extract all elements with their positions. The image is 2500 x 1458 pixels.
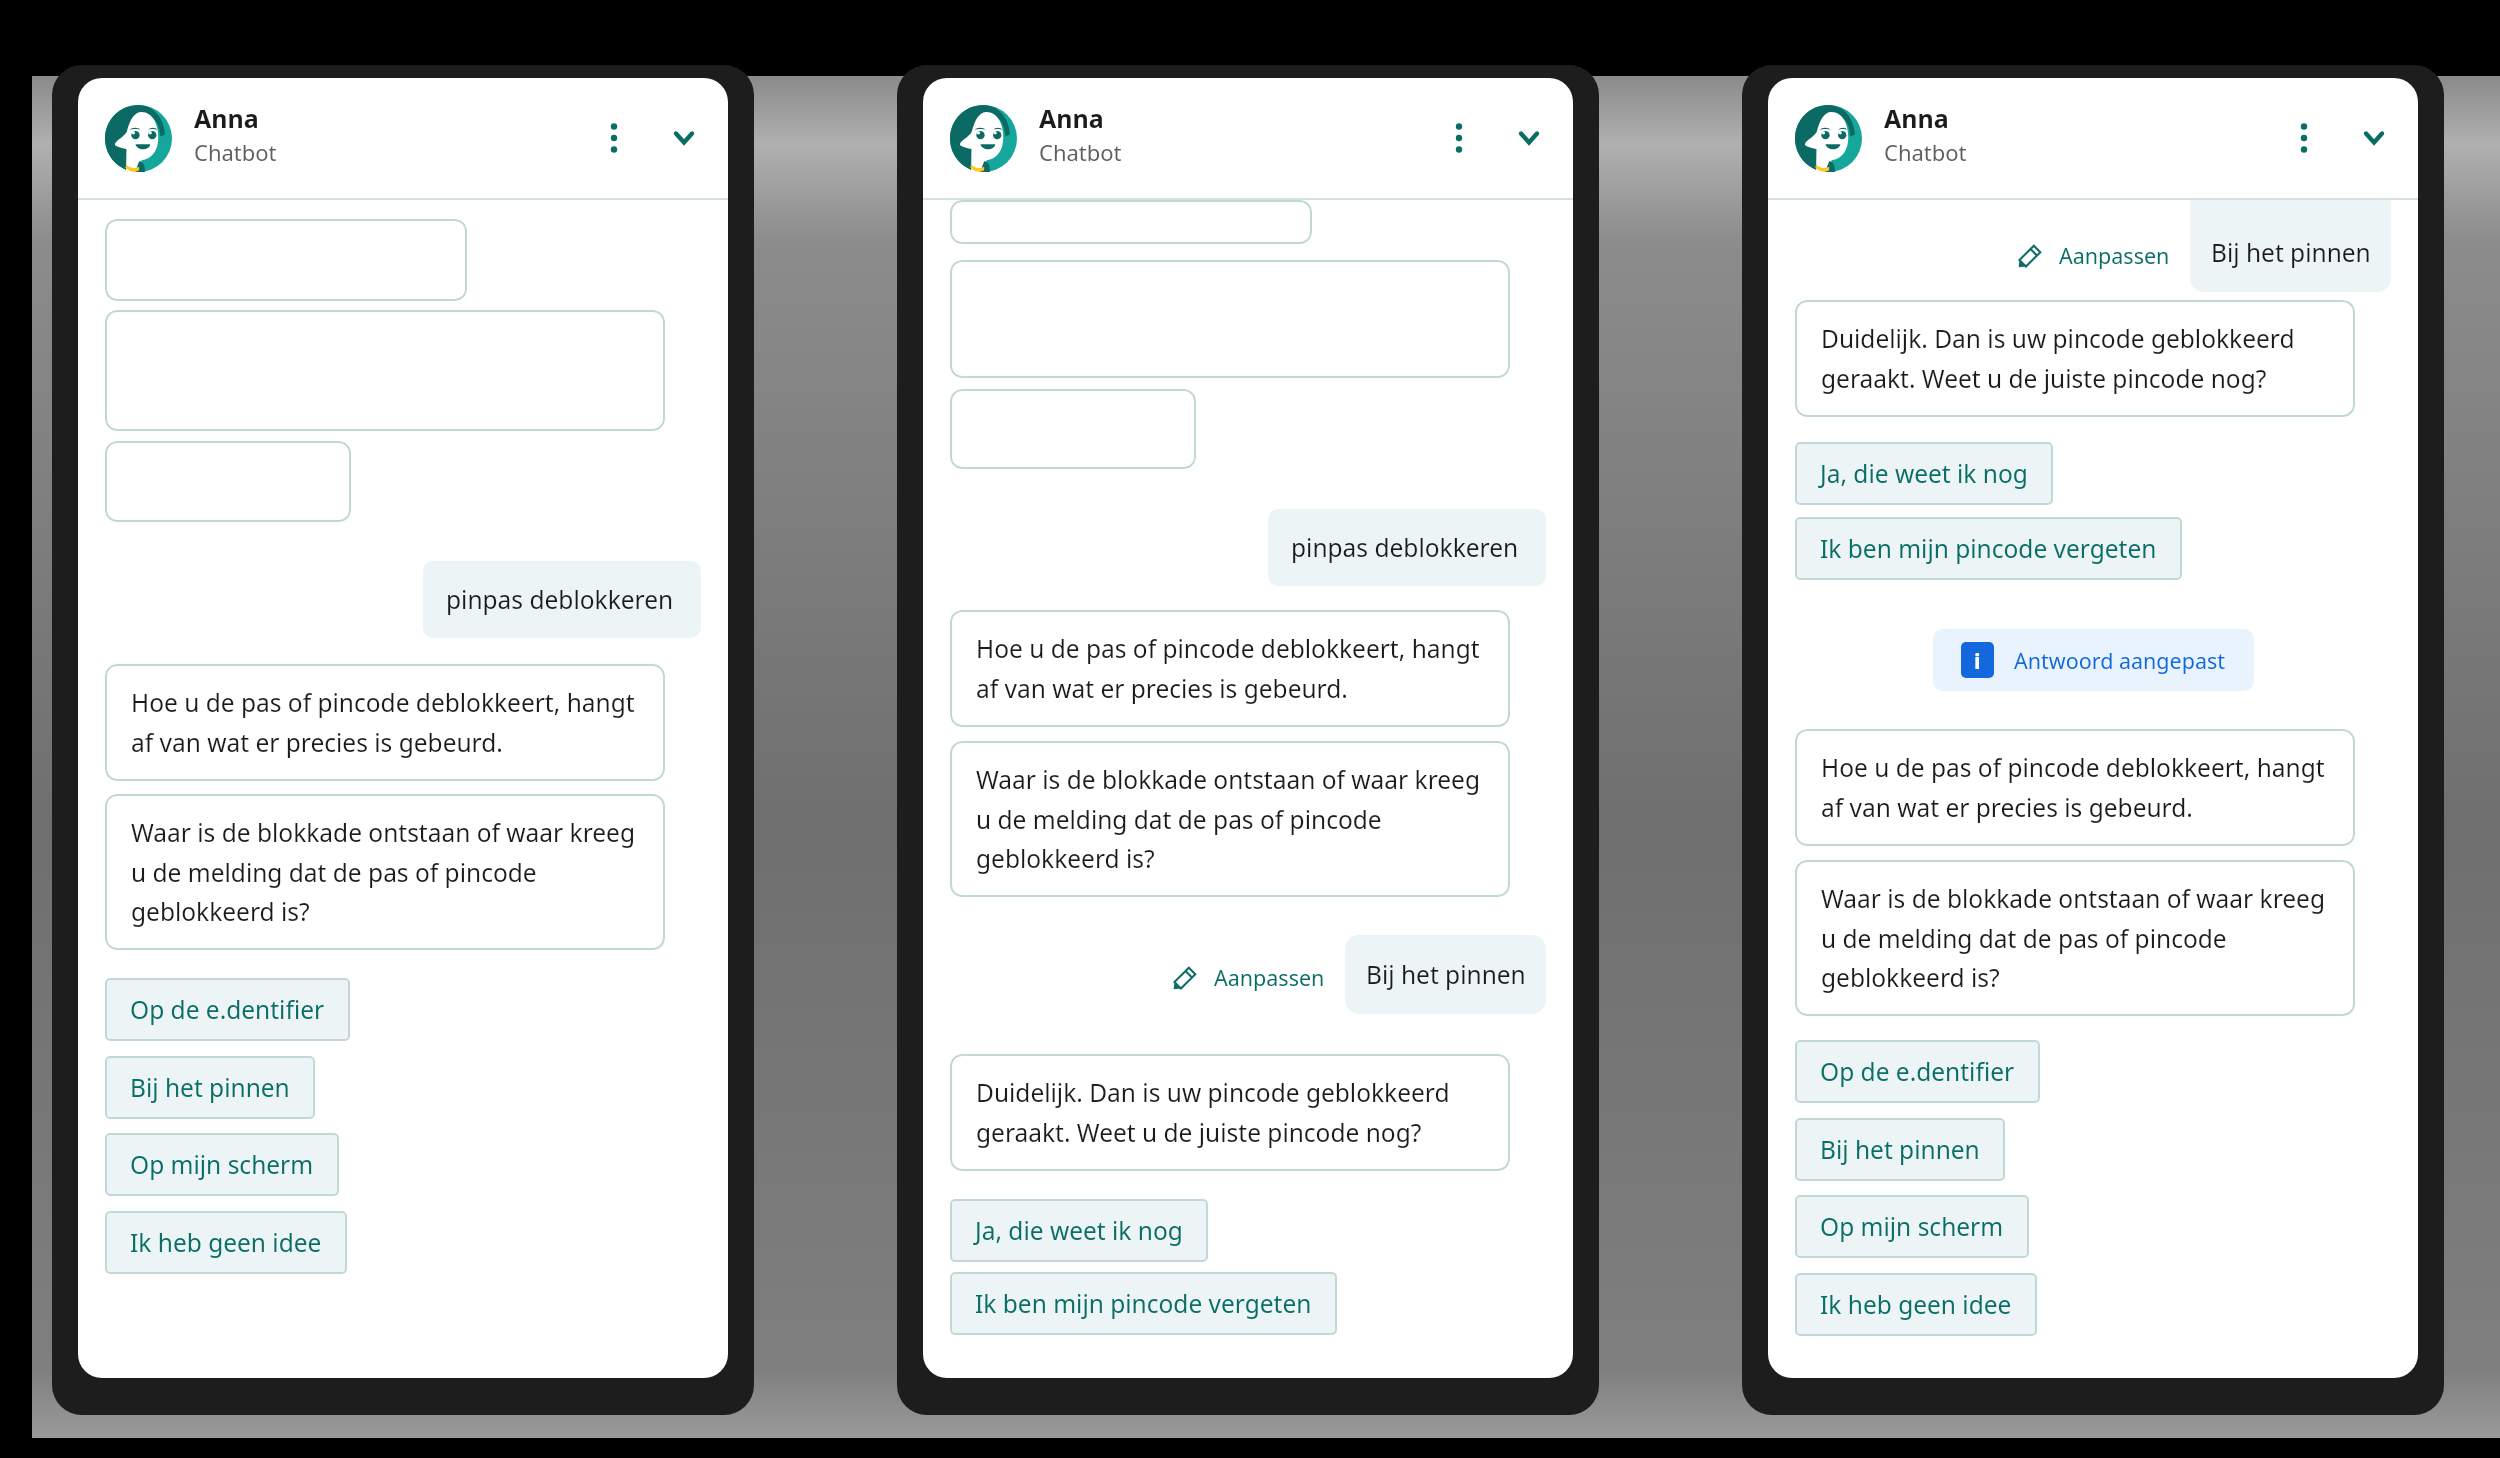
staticText: Aanpassen — [1214, 963, 1325, 992]
button[interactable]: Waar is de blokkade ontstaan of waar kre… — [950, 741, 1510, 897]
button[interactable]: Bij het pinnen — [1345, 935, 1546, 1014]
staticText: Ik heb geen idee — [130, 1226, 322, 1259]
staticText: Waar is de blokkade ontstaan of waar kre… — [1821, 882, 2329, 994]
button[interactable]: Op de e.dentifier — [1795, 1040, 2040, 1103]
staticText: Anna — [1039, 101, 1104, 135]
button[interactable]: pinpas deblokkeren — [1268, 509, 1546, 586]
staticText: Ja, die weet ik nog — [975, 1214, 1183, 1247]
button[interactable]: Aanpassen — [2018, 241, 2190, 292]
staticText: Bij het pinnen — [2211, 236, 2371, 269]
button[interactable]: Chat message — [105, 219, 467, 301]
other: Anna chatbot avatar — [950, 105, 1017, 172]
staticText: Anna — [194, 101, 259, 135]
button[interactable]: pinpas deblokkeren — [423, 561, 701, 638]
button[interactable]: Ik ben mijn pincode vergeten — [950, 1272, 1337, 1335]
button[interactable]: Hoe u de pas of pincode deblokkeert, han… — [950, 610, 1510, 727]
button[interactable]: Op mijn scherm — [105, 1133, 339, 1196]
staticText: Op de e.dentifier — [130, 993, 325, 1026]
other: Anna chatbot avatar — [105, 105, 172, 172]
button[interactable]: Collapse — [657, 111, 711, 165]
button[interactable]: Collapse — [2347, 111, 2401, 165]
staticText: Hoe u de pas of pincode deblokkeert, han… — [1821, 751, 2329, 824]
button[interactable]: Duidelijk. Dan is uw pincode geblokkeerd… — [1795, 300, 2355, 417]
staticText: Chatbot — [1884, 137, 1967, 167]
button[interactable]: Collapse — [1502, 111, 1556, 165]
button[interactable]: More options — [587, 111, 641, 165]
staticText: Anna — [1884, 101, 1949, 135]
button[interactable]: More options — [2277, 111, 2331, 165]
button[interactable]: Ik ben mijn pincode vergeten — [1795, 517, 2182, 580]
staticText: Hoe u de pas of pincode deblokkeert, han… — [131, 686, 639, 759]
button[interactable]: Op de e.dentifier — [105, 978, 350, 1041]
button[interactable]: i — [1933, 629, 2254, 691]
button[interactable]: Bij het pinnen — [1795, 1118, 2005, 1181]
staticText: Aanpassen — [2059, 241, 2170, 270]
staticText: Ja, die weet ik nog — [1820, 457, 2028, 490]
button[interactable]: Waar is de blokkade ontstaan of waar kre… — [105, 794, 665, 950]
button[interactable]: Bij het pinnen — [105, 1056, 315, 1119]
button[interactable]: Chat message — [950, 260, 1510, 378]
button[interactable]: Chat message — [105, 310, 665, 431]
staticText: Chatbot — [194, 137, 277, 167]
staticText: Ik ben mijn pincode vergeten — [975, 1287, 1312, 1320]
staticText: Bij het pinnen — [1820, 1133, 1980, 1166]
button[interactable]: Chat message — [105, 441, 351, 522]
staticText: Waar is de blokkade ontstaan of waar kre… — [131, 816, 639, 928]
staticText: Waar is de blokkade ontstaan of waar kre… — [976, 763, 1484, 875]
button[interactable]: Chat message — [950, 389, 1196, 469]
staticText: Ik heb geen idee — [1820, 1288, 2012, 1321]
staticText: Duidelijk. Dan is uw pincode geblokkeerd… — [1821, 322, 2329, 395]
staticText: Chatbot — [1039, 137, 1122, 167]
button[interactable]: More options — [1432, 111, 1486, 165]
staticText: Bij het pinnen — [130, 1071, 290, 1104]
button[interactable]: Waar is de blokkade ontstaan of waar kre… — [1795, 860, 2355, 1016]
button[interactable]: Bij het pinnen — [2190, 200, 2391, 292]
other: Anna chatbot avatar — [1795, 105, 1862, 172]
button[interactable]: Ik heb geen idee — [105, 1211, 347, 1274]
button[interactable]: Ja, die weet ik nog — [1795, 442, 2053, 505]
button[interactable]: Hoe u de pas of pincode deblokkeert, han… — [105, 664, 665, 781]
button[interactable]: Chat message — [950, 200, 1312, 244]
staticText: Ik ben mijn pincode vergeten — [1820, 532, 2157, 565]
staticText: pinpas deblokkeren — [446, 583, 674, 616]
staticText: Hoe u de pas of pincode deblokkeert, han… — [976, 632, 1484, 705]
button[interactable]: Op mijn scherm — [1795, 1195, 2029, 1258]
staticText: Bij het pinnen — [1366, 958, 1526, 991]
button[interactable]: Duidelijk. Dan is uw pincode geblokkeerd… — [950, 1054, 1510, 1171]
staticText: Antwoord aangepast — [2014, 646, 2226, 675]
staticText: i — [1974, 645, 1981, 675]
staticText: Op mijn scherm — [1820, 1210, 2004, 1243]
button[interactable]: Hoe u de pas of pincode deblokkeert, han… — [1795, 729, 2355, 846]
button[interactable]: Ja, die weet ik nog — [950, 1199, 1208, 1262]
staticText: pinpas deblokkeren — [1291, 531, 1519, 564]
staticText: Op de e.dentifier — [1820, 1055, 2015, 1088]
button[interactable]: Ik heb geen idee — [1795, 1273, 2037, 1336]
staticText: Op mijn scherm — [130, 1148, 314, 1181]
button[interactable]: Aanpassen — [1173, 963, 1345, 1014]
staticText: Duidelijk. Dan is uw pincode geblokkeerd… — [976, 1076, 1484, 1149]
